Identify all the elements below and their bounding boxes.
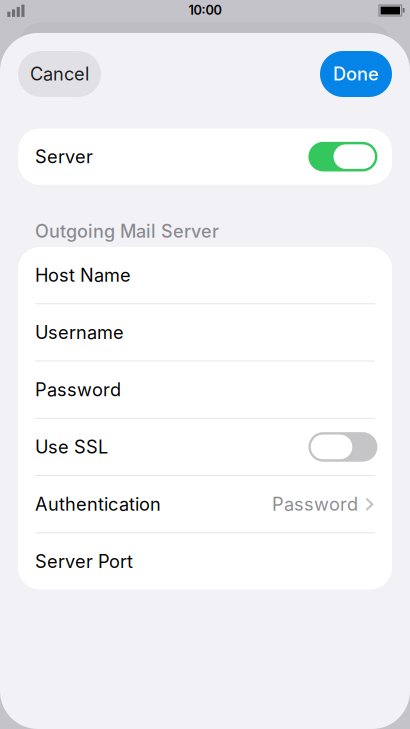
button[interactable]: Password: [18, 361, 392, 418]
staticText: Username: [35, 321, 124, 343]
staticText: Password: [272, 493, 358, 515]
staticText: Outgoing Mail Server: [35, 220, 219, 242]
staticText: Server: [35, 146, 93, 168]
staticText: Host Name: [35, 264, 131, 286]
button[interactable]: Server: [18, 128, 392, 185]
button[interactable]: Cancel: [18, 51, 101, 97]
staticText: Done: [333, 63, 379, 85]
staticText: Password: [35, 379, 121, 401]
staticText: 10:00: [188, 2, 221, 18]
button[interactable]: Done: [320, 51, 392, 97]
staticText: Server Port: [35, 550, 133, 572]
button[interactable]: Username: [18, 304, 392, 360]
staticText: Cancel: [30, 63, 89, 85]
button[interactable]: Server Port: [18, 533, 392, 590]
staticText: Use SSL: [35, 436, 108, 458]
button[interactable]: Use SSL: [18, 419, 392, 475]
button[interactable]: Authentication: [18, 476, 392, 532]
staticText: Authentication: [35, 493, 161, 515]
button[interactable]: Host Name: [18, 247, 392, 303]
